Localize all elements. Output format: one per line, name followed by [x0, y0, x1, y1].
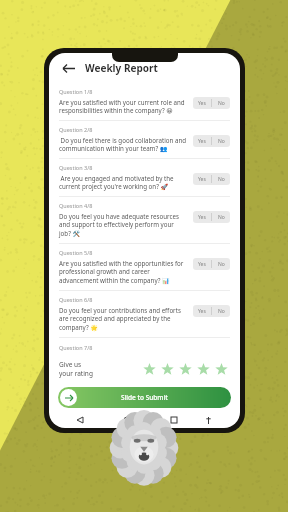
staticText: Question 4/8 [59, 202, 93, 209]
staticText: Are you satisfied with your current role… [59, 98, 187, 115]
button[interactable]: No [212, 305, 230, 317]
button[interactable]: No [212, 211, 230, 223]
button[interactable]: Rate 3 stars [178, 362, 192, 376]
staticText: No [218, 308, 225, 315]
staticText: Question 2/8 [59, 126, 93, 133]
button[interactable]: Yes [193, 135, 211, 147]
button[interactable]: Recent apps [167, 413, 181, 427]
staticText: Yes [198, 138, 206, 145]
button[interactable]: Yes [193, 258, 211, 270]
staticText: Do you feel there is good collaboration … [59, 136, 187, 153]
staticText: Give us your rating [59, 360, 93, 378]
button[interactable]: Slide to Submit [58, 387, 231, 408]
staticText: Do you feel your contributions and effor… [59, 306, 187, 332]
staticText: No [218, 138, 225, 145]
staticText: No [218, 100, 225, 107]
button[interactable]: Yes [193, 173, 211, 185]
staticText: No [218, 214, 225, 221]
button[interactable]: No [212, 97, 230, 109]
button[interactable]: Yes [193, 211, 211, 223]
staticText: Yes [198, 176, 206, 183]
button[interactable]: Back [73, 413, 87, 427]
staticText: Question 6/8 [59, 296, 93, 303]
staticText: Yes [198, 214, 206, 221]
staticText: Are you engaged and motivated by the cur… [59, 174, 187, 191]
staticText: Yes [198, 261, 206, 268]
staticText: Do you feel you have adequate resources … [59, 212, 187, 238]
button[interactable]: Rate 4 stars [196, 362, 210, 376]
staticText: Slide to Submit [121, 393, 168, 402]
button[interactable]: Yes [193, 305, 211, 317]
staticText: Question 1/8 [59, 88, 93, 95]
button[interactable]: Rate 1 stars [142, 362, 156, 376]
button[interactable]: Rate 2 stars [160, 362, 174, 376]
staticText: Question 7/8 [59, 344, 93, 351]
staticText: Yes [198, 308, 206, 315]
staticText: No [218, 261, 225, 268]
button[interactable]: No [212, 258, 230, 270]
button[interactable]: Back [59, 59, 77, 77]
button[interactable]: Rate 5 stars [214, 362, 228, 376]
staticText: No [218, 176, 225, 183]
staticText: Yes [198, 100, 206, 107]
button[interactable]: Yes [193, 97, 211, 109]
staticText: Question 3/8 [59, 164, 93, 171]
button[interactable]: No [212, 173, 230, 185]
staticText: Are you satisfied with the opportunities… [59, 259, 187, 285]
button[interactable]: No [212, 135, 230, 147]
staticText: Question 5/8 [59, 249, 93, 256]
staticText: Weekly Report [85, 61, 158, 75]
button[interactable]: Pointer [201, 413, 215, 427]
button[interactable]: Home [120, 413, 134, 427]
